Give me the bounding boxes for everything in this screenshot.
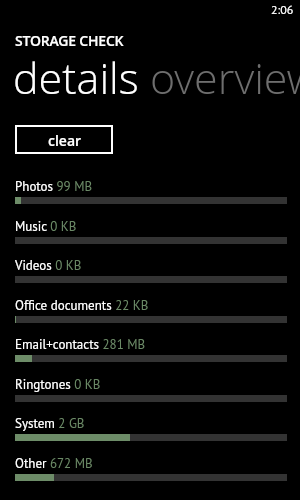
staticText: Office documents 22 KB: [15, 297, 149, 314]
staticText: Photos 99 MB: [15, 178, 93, 195]
staticText: Ringtones 0 KB: [15, 376, 101, 393]
staticText: System 2 GB: [15, 415, 85, 432]
button[interactable]: Videos 0 KB: [0, 257, 300, 296]
button[interactable]: Office documents 22 KB: [0, 297, 300, 336]
staticText: Email+contacts 281 MB: [15, 336, 146, 353]
staticText: 2:06: [271, 2, 294, 18]
button[interactable]: Email+contacts 281 MB: [0, 336, 300, 375]
button[interactable]: clear: [15, 125, 113, 154]
staticText: Other 672 MB: [15, 455, 93, 472]
button[interactable]: overview: [150, 48, 300, 107]
button[interactable]: Clock 2:06: [271, 2, 294, 18]
staticText: clear: [48, 131, 82, 150]
staticText: STORAGE CHECK: [15, 31, 124, 50]
button[interactable]: Other 672 MB: [0, 455, 300, 494]
button[interactable]: System 2 GB: [0, 415, 300, 454]
button[interactable]: Music 0 KB: [0, 218, 300, 257]
staticText: Music 0 KB: [15, 218, 77, 235]
staticText: Videos 0 KB: [15, 257, 82, 274]
button[interactable]: Ringtones 0 KB: [0, 376, 300, 415]
button[interactable]: details: [13, 48, 139, 107]
button[interactable]: Photos 99 MB: [0, 178, 300, 217]
